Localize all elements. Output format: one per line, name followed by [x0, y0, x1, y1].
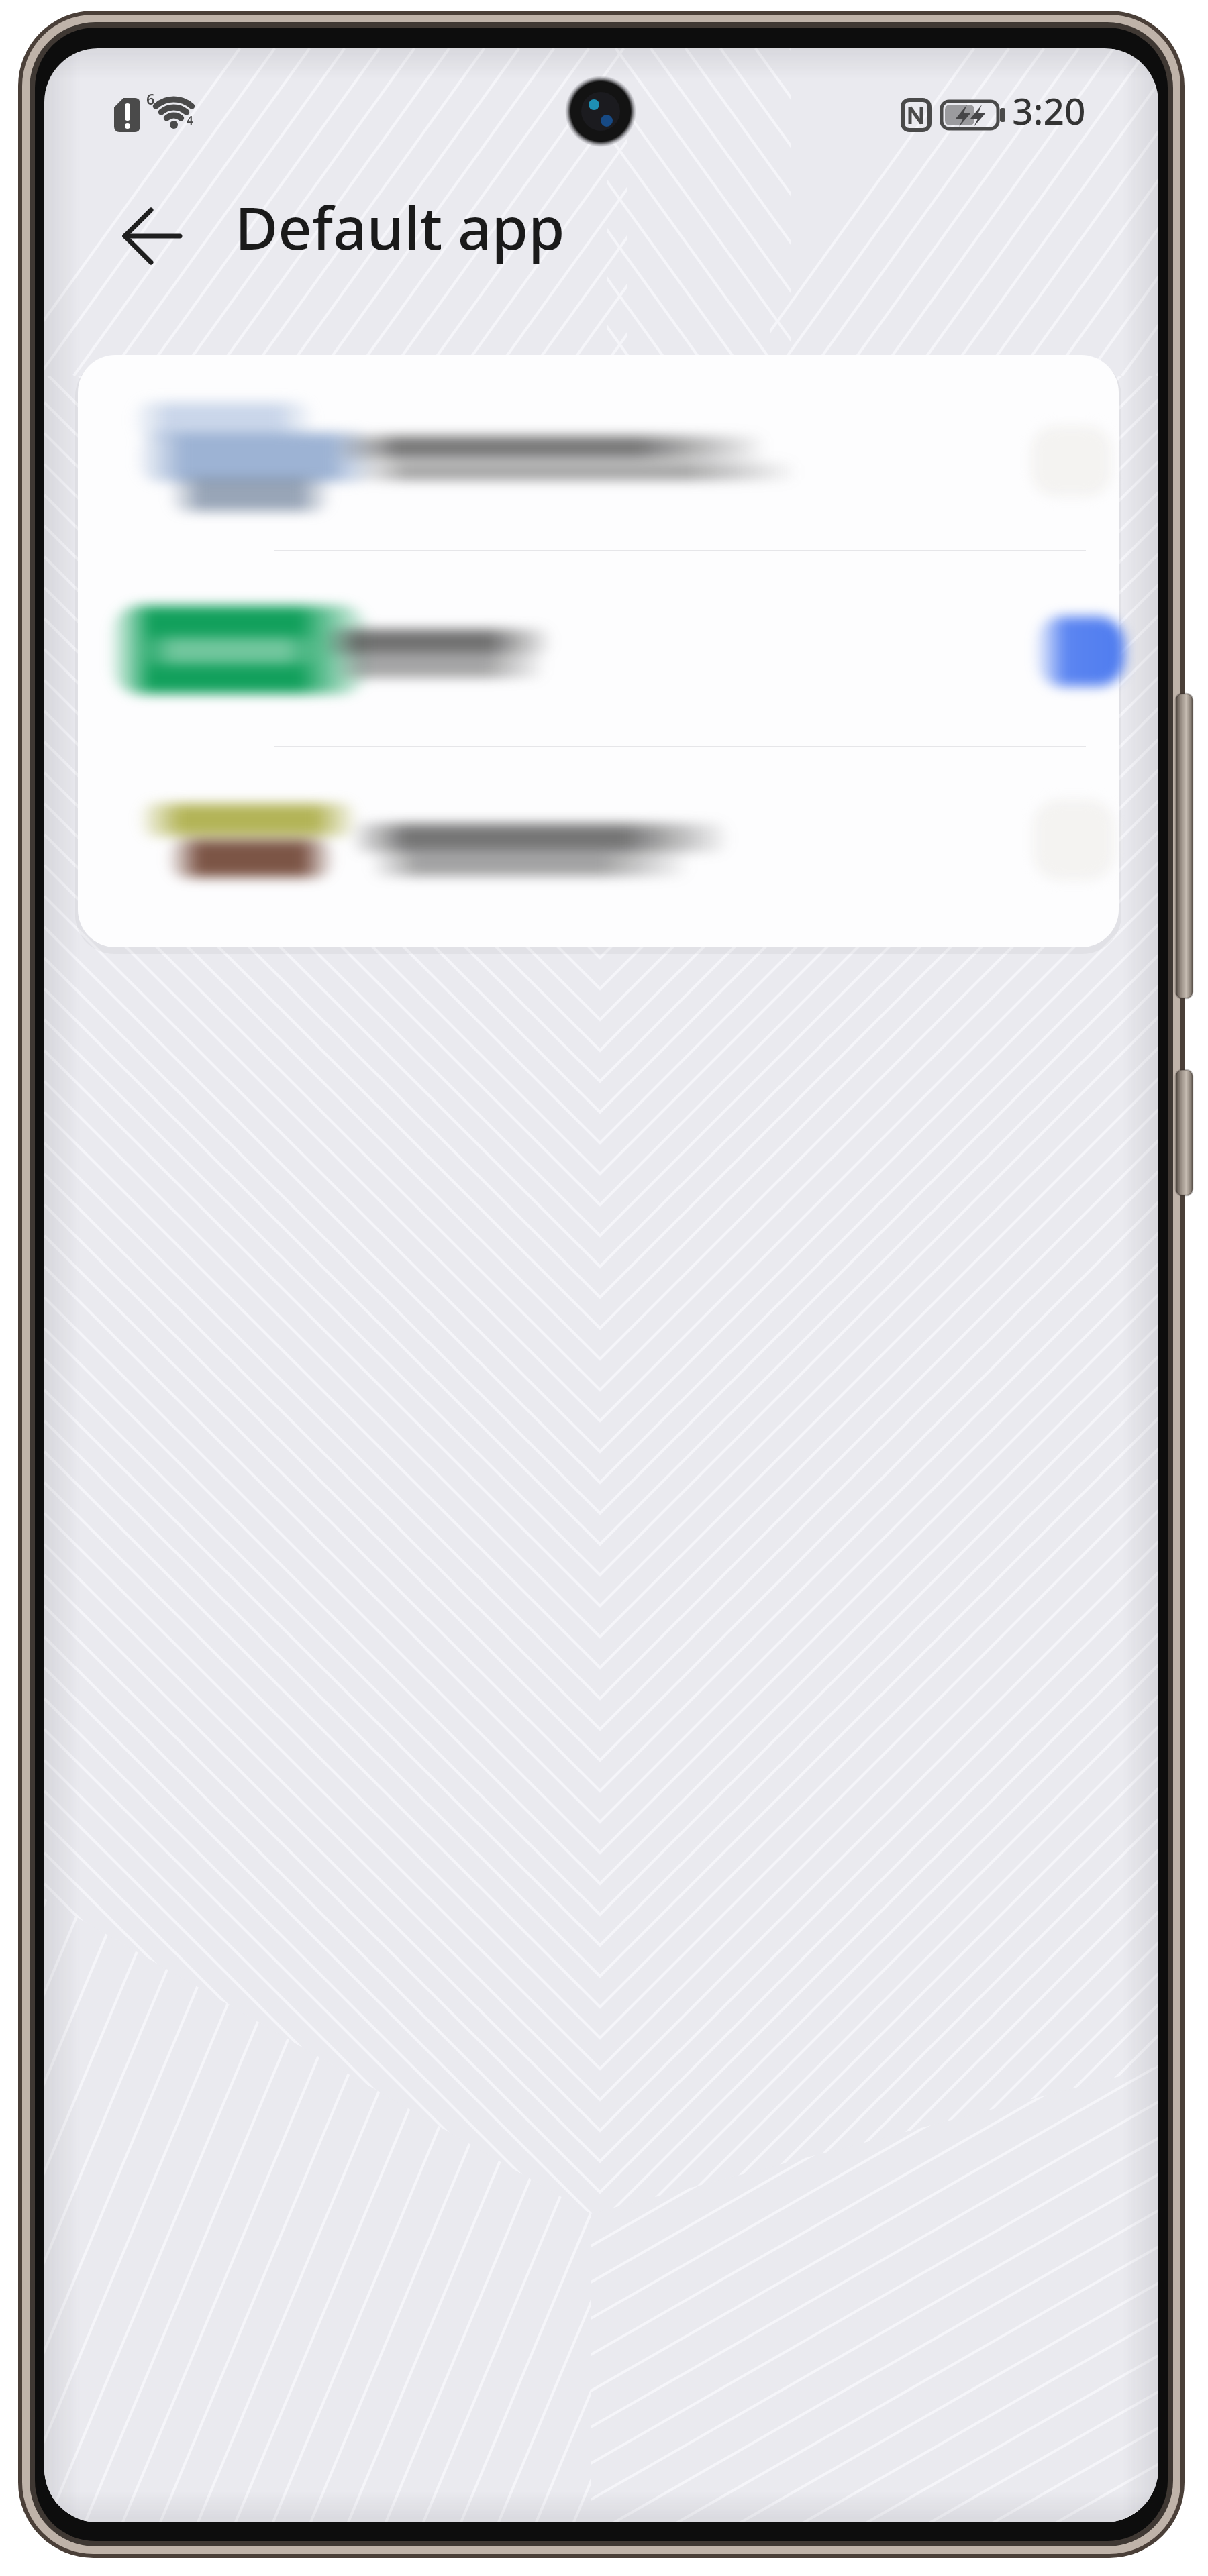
button[interactable] [78, 355, 1119, 551]
button[interactable] [101, 198, 195, 275]
button[interactable] [78, 551, 1119, 747]
staticText: Default app [235, 186, 565, 267]
button[interactable] [78, 747, 1119, 947]
staticText: 3:20 [1012, 85, 1086, 136]
staticText: 6 [146, 89, 155, 109]
staticText: 4 [187, 113, 193, 128]
